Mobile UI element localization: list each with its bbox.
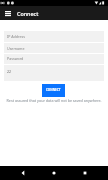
staticText: IP Address	[7, 34, 25, 39]
staticText: Connect	[17, 10, 39, 17]
button[interactable]: Home	[49, 168, 59, 178]
staticText: Rest assured that your data will not be …	[0, 98, 108, 103]
button[interactable]: Recent apps	[80, 168, 90, 178]
button[interactable]: Back	[18, 168, 28, 178]
button[interactable]: CONNECT	[42, 84, 65, 97]
button[interactable]: Open navigation menu	[1, 6, 15, 20]
staticText: 22	[7, 69, 12, 74]
staticText: Username	[7, 46, 25, 51]
staticText: CONNECT	[46, 88, 61, 92]
staticText: Password	[7, 56, 24, 61]
